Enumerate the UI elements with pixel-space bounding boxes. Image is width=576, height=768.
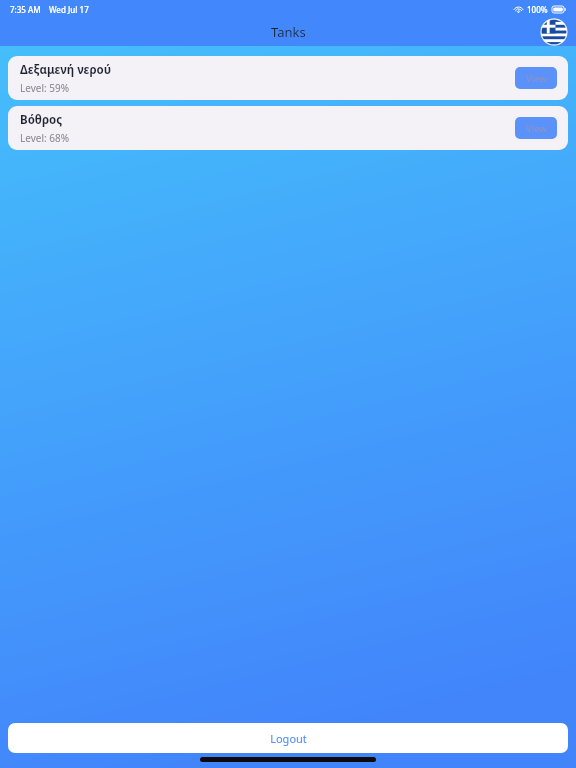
staticText: View	[526, 122, 547, 135]
button[interactable]: Βόθρος	[8, 106, 568, 150]
button[interactable]: View	[515, 67, 557, 89]
staticText: View	[526, 72, 547, 85]
staticText: 100%	[527, 4, 548, 15]
staticText: Wed Jul 17	[49, 4, 89, 15]
button[interactable]: View	[515, 117, 557, 139]
button[interactable]: Δεξαμενή νερού	[8, 56, 568, 100]
button[interactable]: Change language	[540, 18, 568, 46]
staticText: Logout	[270, 731, 307, 746]
staticText: Δεξαμενή νερού	[20, 62, 112, 78]
staticText: Level: 68%	[20, 131, 70, 145]
staticText: Tanks	[271, 23, 306, 41]
button[interactable]: Logout	[8, 723, 568, 753]
staticText: Level: 59%	[20, 81, 70, 95]
staticText: 7:35 AM	[10, 4, 41, 15]
staticText: Βόθρος	[20, 112, 63, 128]
